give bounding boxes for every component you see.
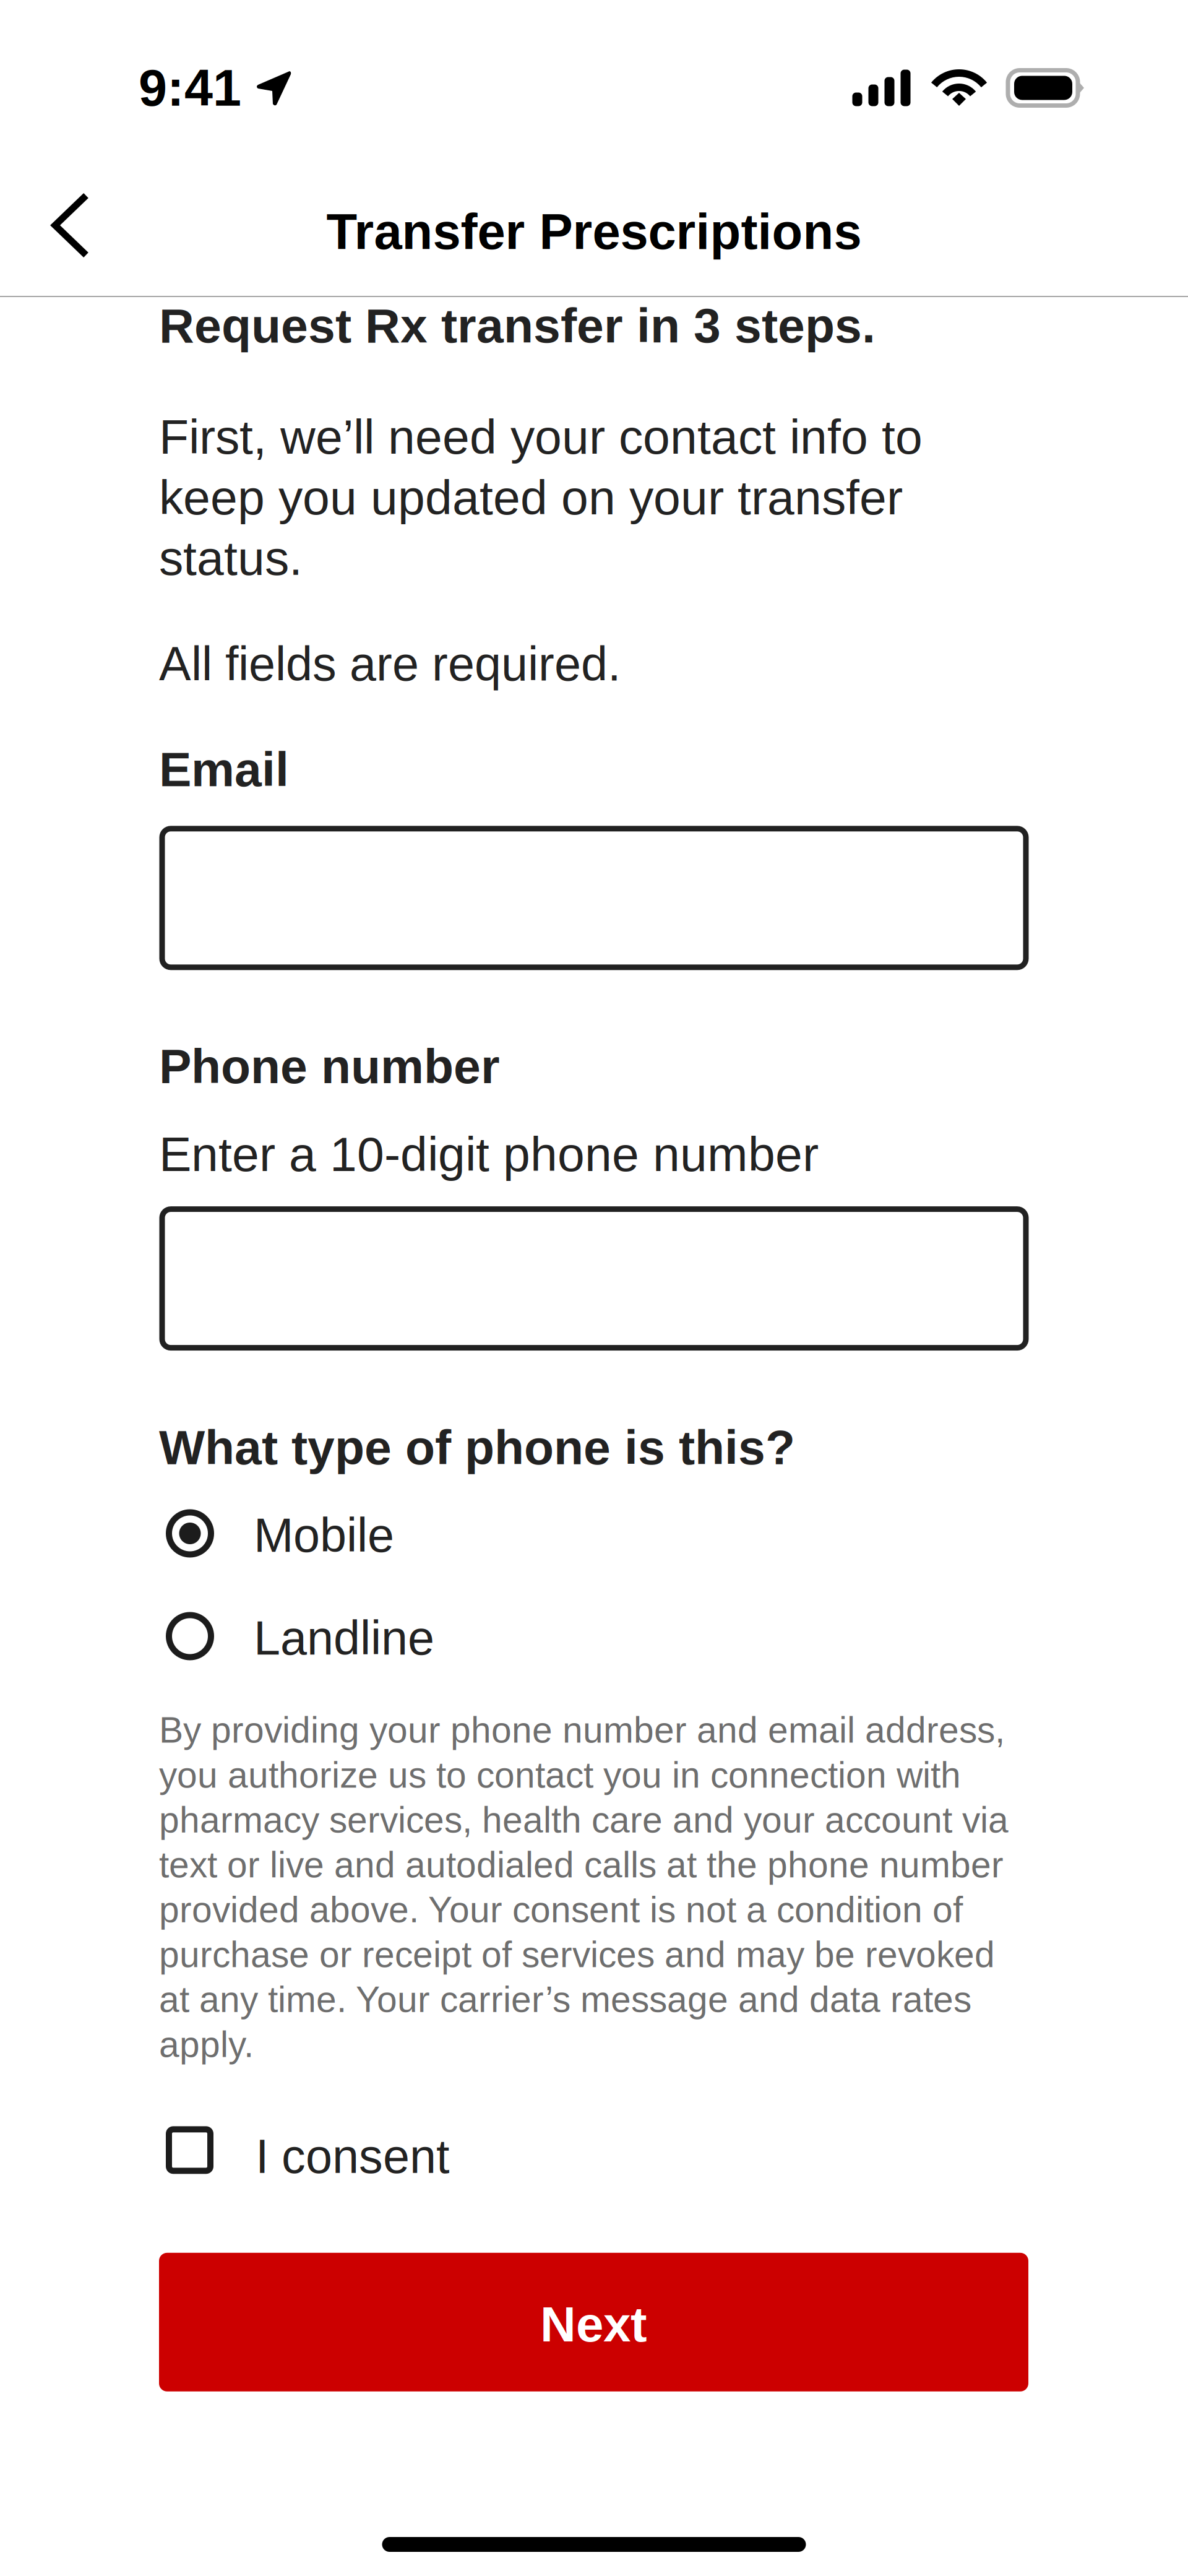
button[interactable]: Mobile bbox=[159, 1503, 1028, 1564]
staticText: Enter a 10-digit phone number bbox=[159, 1127, 819, 1181]
button[interactable]: Next bbox=[159, 2253, 1028, 2391]
staticText: Request Rx transfer in 3 steps. bbox=[159, 298, 876, 353]
button[interactable]: Landline bbox=[159, 1606, 1028, 1666]
staticText: First, we’ll need your contact info to k… bbox=[159, 410, 923, 585]
button[interactable]: I consent bbox=[159, 2120, 1028, 2180]
staticText: Email bbox=[159, 742, 289, 796]
staticText: Transfer Prescriptions bbox=[326, 203, 862, 260]
staticText: Next bbox=[540, 2297, 647, 2352]
staticText: By providing your phone number and email… bbox=[159, 1710, 1009, 2065]
staticText: Phone number bbox=[159, 1039, 500, 1093]
staticText: Mobile bbox=[254, 1509, 394, 1562]
staticText: I consent bbox=[256, 2130, 449, 2183]
staticText: What type of phone is this? bbox=[159, 1420, 795, 1475]
staticText: Landline bbox=[254, 1611, 434, 1665]
staticText: All fields are required. bbox=[159, 637, 621, 691]
button[interactable]: Back bbox=[0, 176, 127, 287]
staticText: 9:41 bbox=[139, 59, 241, 116]
